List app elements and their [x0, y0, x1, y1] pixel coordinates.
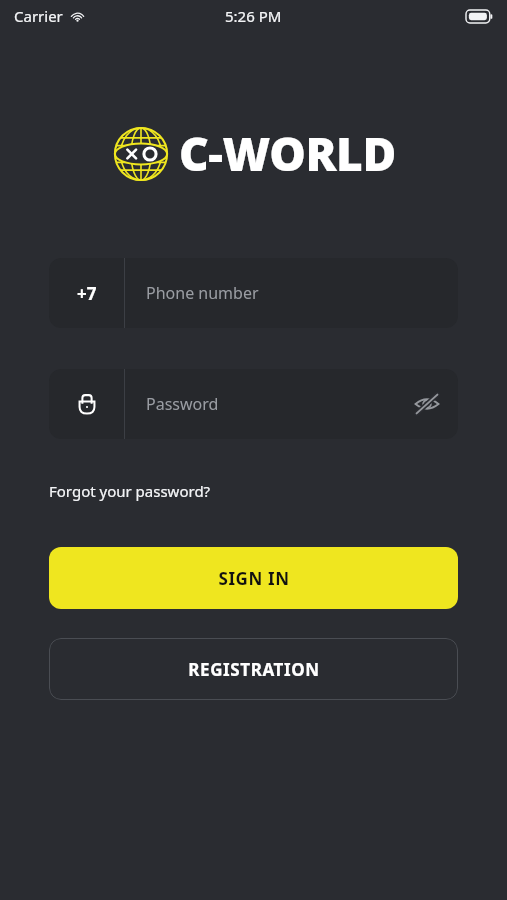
button[interactable]: +7	[49, 258, 124, 328]
button[interactable]: Password	[49, 369, 458, 439]
staticText: +7	[77, 282, 97, 305]
staticText: Password	[146, 393, 219, 415]
button[interactable]: REGISTRATION	[49, 638, 458, 700]
staticText: 5:26 PM	[225, 6, 282, 26]
staticText: Phone number	[146, 282, 259, 304]
button[interactable]: Forgot your password?	[49, 481, 211, 501]
staticText: C-WORLD	[179, 122, 396, 185]
staticText: Carrier	[14, 6, 63, 26]
staticText: SIGN IN	[218, 567, 290, 590]
staticText: Forgot your password?	[49, 481, 211, 501]
staticText: REGISTRATION	[188, 658, 320, 681]
button[interactable]: +7	[49, 258, 458, 328]
button[interactable]: Show password	[396, 369, 458, 439]
button[interactable]: SIGN IN	[49, 547, 458, 609]
